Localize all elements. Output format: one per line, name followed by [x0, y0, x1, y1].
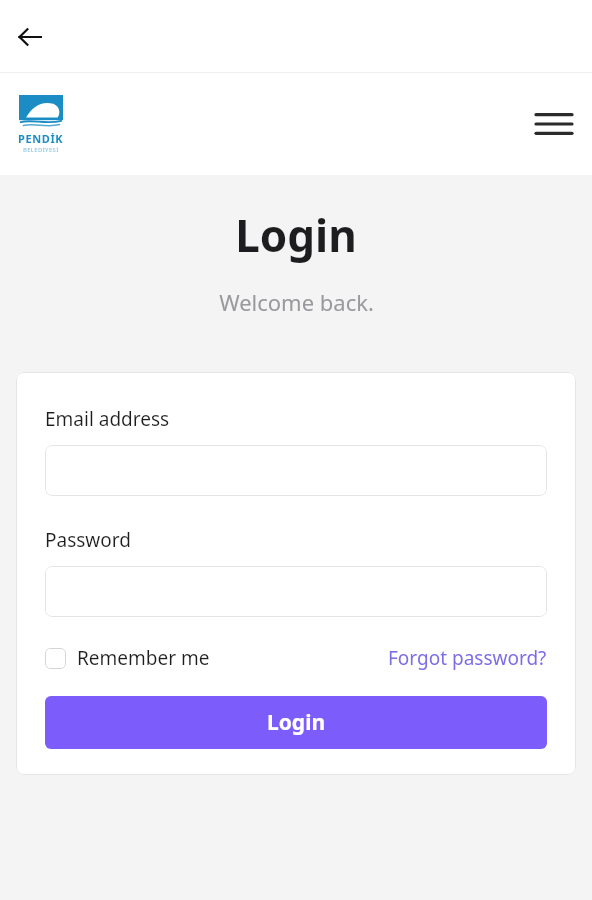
staticText: Email address — [45, 406, 170, 432]
staticText: BELEDİYESİ — [23, 146, 59, 154]
staticText: PENDİK — [18, 131, 64, 146]
staticText: Remember me — [77, 645, 210, 671]
button[interactable]: Back — [8, 15, 52, 59]
staticText: Login — [235, 205, 357, 265]
button[interactable]: Pendik Belediyesi logo — [18, 95, 64, 154]
button[interactable]: Login — [45, 696, 547, 749]
staticText: Password — [45, 527, 131, 553]
button[interactable]: Forgot password? — [388, 641, 547, 675]
button[interactable]: Remember me — [45, 641, 210, 675]
button[interactable]: Menu — [528, 98, 580, 150]
button[interactable]: Email address field — [45, 445, 547, 496]
staticText: Login — [267, 708, 326, 737]
staticText: Welcome back. — [219, 287, 374, 317]
button[interactable]: Password field — [45, 566, 547, 617]
staticText: Forgot password? — [388, 645, 547, 671]
